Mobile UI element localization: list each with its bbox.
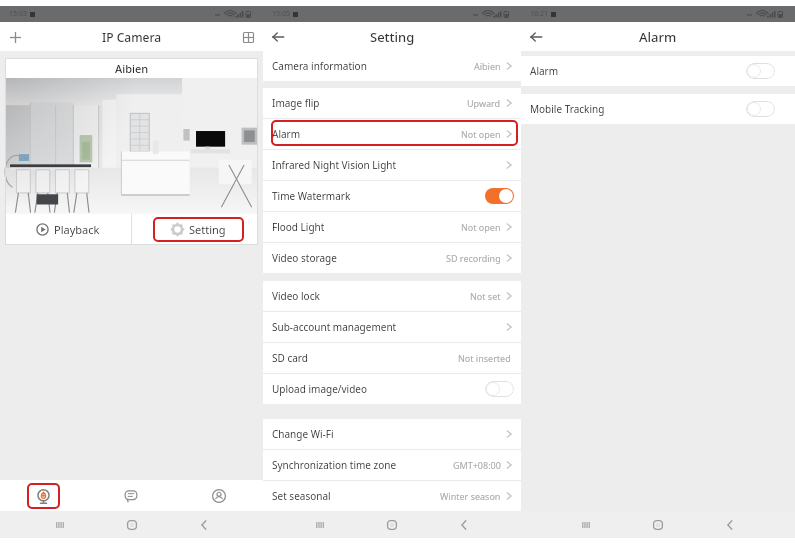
staticText: SD recording	[446, 252, 501, 264]
button[interactable]: Upload image/video	[263, 374, 521, 404]
button[interactable]: Profile	[207, 484, 231, 508]
staticText: Alarm	[639, 28, 677, 46]
button[interactable]: Add camera	[4, 26, 26, 48]
staticText: Not open	[461, 221, 501, 233]
button[interactable]: Set seasonal	[263, 481, 521, 511]
staticText: Flood Light	[272, 220, 325, 234]
button[interactable]: Toggle	[485, 381, 514, 397]
button[interactable]: Home	[622, 511, 694, 538]
button[interactable]: Back	[168, 511, 240, 538]
staticText: Aibien	[115, 61, 149, 76]
staticText: Upload image/video	[272, 382, 367, 396]
button[interactable]: SD card	[263, 343, 521, 373]
button[interactable]: Camera information	[263, 51, 521, 81]
button[interactable]: Back	[267, 26, 289, 48]
button[interactable]: Time Watermark	[263, 181, 521, 211]
button[interactable]: Recents	[284, 511, 356, 538]
button[interactable]: Home	[96, 511, 168, 538]
staticText: Mobile Tracking	[530, 102, 605, 116]
staticText: Change Wi-Fi	[272, 427, 334, 441]
staticText: SD card	[272, 351, 308, 365]
staticText: Set seasonal	[272, 489, 331, 503]
button[interactable]: Alarm	[263, 119, 521, 149]
button[interactable]: Infrared Night Vision Light	[263, 150, 521, 180]
button[interactable]: Toggle	[746, 63, 775, 79]
button[interactable]: Recents	[550, 511, 622, 538]
staticText: Time Watermark	[272, 189, 351, 203]
button[interactable]: Flood Light	[263, 212, 521, 242]
button[interactable]: Mobile Tracking	[521, 94, 795, 124]
button[interactable]: Grid view	[237, 26, 259, 48]
staticText: Not set	[470, 290, 501, 302]
staticText: 15:05	[272, 9, 290, 19]
button[interactable]: Toggle	[485, 188, 514, 204]
staticText: Alarm	[530, 64, 559, 78]
staticText: Synchronization time zone	[272, 458, 397, 472]
staticText: Image flip	[272, 96, 320, 110]
button[interactable]: Playback	[5, 214, 131, 245]
staticText: 15:03	[9, 9, 27, 19]
button[interactable]: Back	[428, 511, 500, 538]
button[interactable]: Messages	[119, 484, 143, 508]
staticText: Alarm	[272, 127, 301, 141]
button[interactable]: Back	[694, 511, 766, 538]
button[interactable]: Video storage	[263, 243, 521, 273]
staticText: Video storage	[272, 251, 337, 265]
button[interactable]: Cameras	[27, 483, 60, 509]
staticText: Aibien	[474, 60, 501, 72]
staticText: Setting	[370, 28, 415, 46]
staticText: GMT+08:00	[453, 459, 501, 471]
staticText: Infrared Night Vision Light	[272, 158, 397, 172]
button[interactable]: Setting	[153, 217, 244, 242]
button[interactable]: Change Wi-Fi	[263, 419, 521, 449]
staticText: Camera information	[272, 59, 367, 73]
staticText: IP Camera	[102, 29, 162, 45]
button[interactable]: Alarm	[521, 56, 795, 86]
button[interactable]: Synchronization time zone	[263, 450, 521, 480]
button[interactable]: Sub-account management	[263, 312, 521, 342]
staticText: Winter season	[440, 490, 501, 502]
button[interactable]: Recents	[24, 511, 96, 538]
staticText: Playback	[54, 222, 100, 237]
staticText: Not inserted	[458, 352, 511, 364]
staticText: Setting	[189, 222, 226, 237]
button[interactable]: Back	[525, 26, 547, 48]
button[interactable]: Video lock	[263, 281, 521, 311]
staticText: Video lock	[272, 289, 320, 303]
button[interactable]: Home	[356, 511, 428, 538]
staticText: 16:21	[530, 9, 548, 19]
button[interactable]: Image flip	[263, 88, 521, 118]
button[interactable]: Toggle	[746, 101, 775, 117]
staticText: Not open	[461, 128, 501, 140]
staticText: Upward	[467, 97, 501, 109]
staticText: Sub-account management	[272, 320, 397, 334]
